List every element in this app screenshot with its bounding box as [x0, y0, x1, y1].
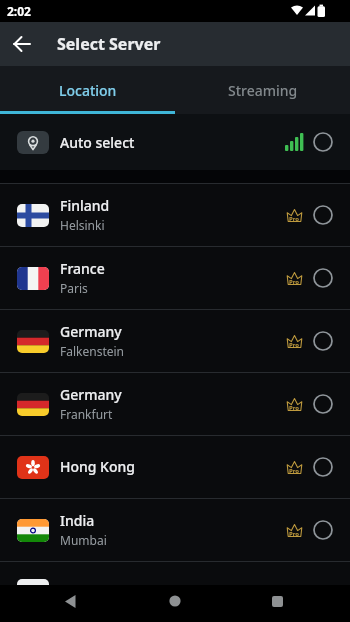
- staticText: Pro: [289, 341, 300, 349]
- staticText: Streaming: [228, 81, 298, 100]
- staticText: Falkenstein: [60, 343, 125, 359]
- staticText: Pro: [289, 404, 300, 412]
- staticText: Frankfurt: [60, 406, 113, 422]
- staticText: Auto select: [60, 133, 135, 152]
- staticText: Pro: [289, 467, 300, 475]
- staticText: Finland: [60, 196, 110, 215]
- button[interactable]: Hong Kong: [0, 436, 350, 498]
- button[interactable]: [263, 587, 291, 615]
- button[interactable]: Germany: [0, 373, 350, 435]
- button[interactable]: [56, 587, 84, 615]
- staticText: Pro: [289, 215, 300, 223]
- staticText: Pro: [289, 278, 300, 286]
- button[interactable]: Germany: [0, 310, 350, 372]
- button[interactable]: India: [0, 499, 350, 561]
- staticText: Paris: [60, 280, 88, 296]
- button[interactable]: [0, 22, 44, 66]
- staticText: India: [60, 511, 95, 530]
- staticText: Helsinki: [60, 217, 105, 233]
- staticText: France: [60, 259, 105, 278]
- button[interactable]: Streaming: [175, 66, 350, 114]
- staticText: Location: [59, 81, 117, 100]
- button[interactable]: [161, 587, 189, 615]
- staticText: Hong Kong: [60, 457, 135, 476]
- staticText: Pro: [289, 530, 300, 538]
- staticText: Germany: [60, 385, 122, 404]
- button[interactable]: Finland: [0, 184, 350, 246]
- staticText: Germany: [60, 322, 122, 341]
- staticText: Mumbai: [60, 532, 107, 548]
- staticText: Select Server: [57, 33, 161, 55]
- staticText: 2:02: [7, 3, 31, 19]
- button[interactable]: France: [0, 247, 350, 309]
- button[interactable]: Auto select: [0, 114, 350, 170]
- button[interactable]: Location: [0, 66, 175, 114]
